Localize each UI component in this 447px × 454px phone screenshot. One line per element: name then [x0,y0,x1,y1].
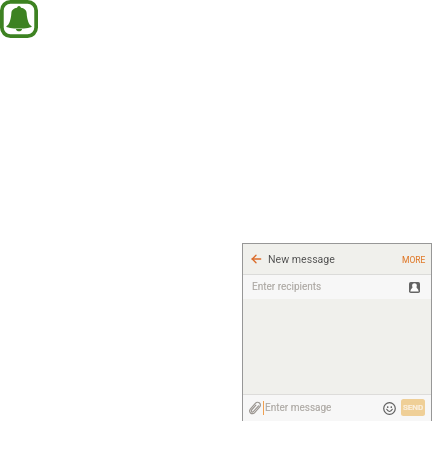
button[interactable]: Enter message [263,395,383,421]
staticText: New message [268,253,335,265]
staticText: Enter message [265,402,332,414]
button[interactable]: Add recipient [409,282,420,293]
button[interactable]: Emoji [383,402,396,415]
button[interactable]: Enter recipients [243,275,431,299]
staticText: SEND [403,403,424,412]
button[interactable]: SEND [401,399,425,416]
button[interactable]: Attach [248,401,262,415]
staticText: MORE [402,255,426,265]
button[interactable]: Back [243,244,268,274]
button[interactable]: MORE [402,245,426,275]
staticText: Enter recipients [252,281,322,293]
